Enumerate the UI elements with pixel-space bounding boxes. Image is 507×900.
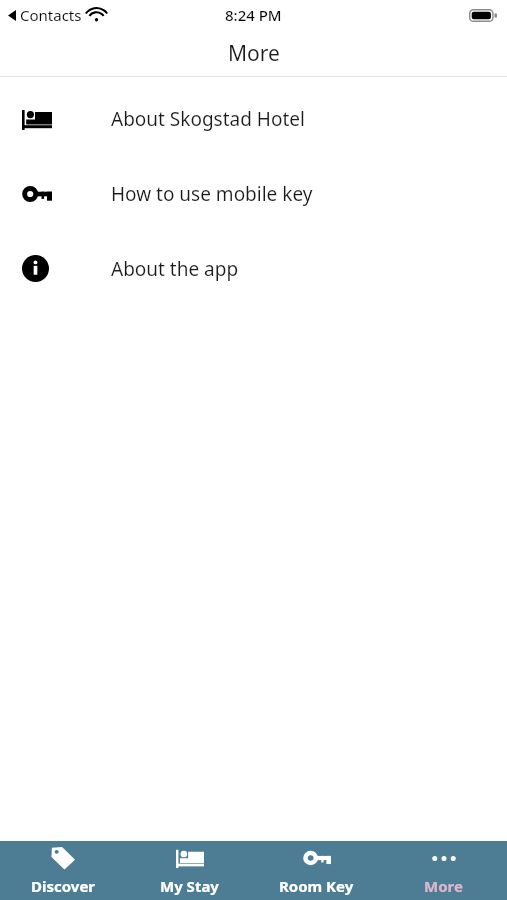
button[interactable]: About the app [0,231,507,306]
button[interactable]: About Skogstad Hotel [0,81,507,156]
other: Discover [50,846,76,870]
button[interactable]: How to use mobile key [0,156,507,231]
staticText: About the app [111,256,239,282]
staticText: More [424,876,463,896]
staticText: How to use mobile key [111,181,313,207]
staticText: About Skogstad Hotel [111,106,305,132]
button[interactable]: My Stay [126,841,253,900]
button[interactable]: More [380,841,507,900]
staticText: 8:24 PM [225,5,282,25]
staticText: Room Key [279,876,354,896]
button[interactable]: Room Key [253,841,380,900]
staticText: More [228,39,280,68]
staticText: My Stay [160,876,219,896]
staticText: Discover [31,876,96,896]
other: My Stay [176,848,204,868]
staticText: Contacts [20,5,82,25]
button[interactable]: Discover [0,841,126,900]
other: More [432,856,456,861]
other: Room Key [303,849,331,867]
